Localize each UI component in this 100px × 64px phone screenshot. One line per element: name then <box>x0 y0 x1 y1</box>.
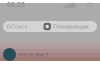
staticText: Что-то текст <box>16 51 48 58</box>
button[interactable]: Что-то текст <box>0 48 100 61</box>
button[interactable]: Поиск <box>3 21 97 32</box>
staticText: Поиск <box>10 23 27 30</box>
staticText: 08:28 <box>7 0 25 9</box>
staticText: Планировщик <box>51 23 89 30</box>
staticText: ▂▄▆ <box>63 1 75 8</box>
staticText <box>75 0 87 19</box>
